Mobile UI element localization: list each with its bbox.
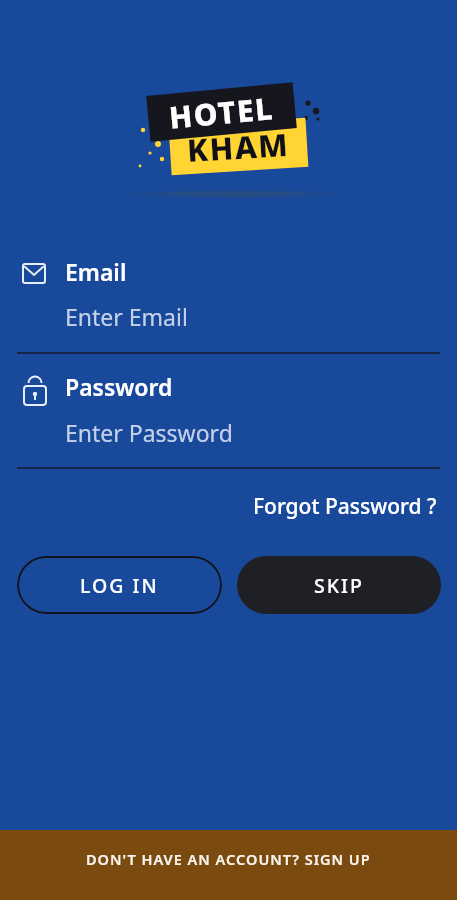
staticText: Password xyxy=(65,371,173,402)
button[interactable]: LOG IN xyxy=(17,556,222,614)
button[interactable]: Enter Password xyxy=(65,417,233,448)
staticText: LOG IN xyxy=(80,572,159,599)
staticText: DON'T HAVE AN ACCOUNT? SIGN UP xyxy=(86,849,371,869)
button[interactable]: Enter Email xyxy=(65,301,188,332)
button[interactable]: SKIP xyxy=(237,556,441,614)
staticText: HOTEL xyxy=(167,87,276,138)
button[interactable]: Forgot Password ? xyxy=(253,492,437,521)
staticText: SKIP xyxy=(314,572,364,599)
button[interactable]: DON'T HAVE AN ACCOUNT? SIGN UP xyxy=(0,830,457,900)
staticText: KHAM xyxy=(186,123,291,171)
staticText: Email xyxy=(65,256,127,287)
